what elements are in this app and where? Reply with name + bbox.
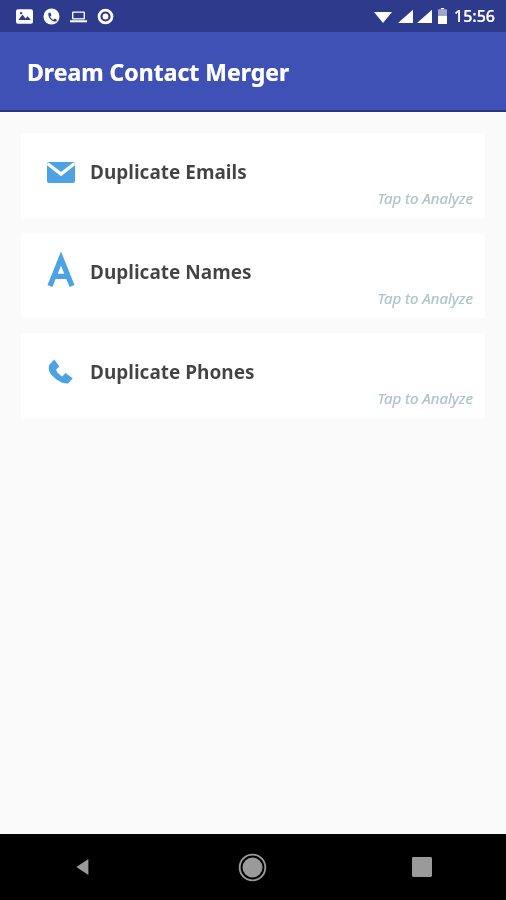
staticText: Tap to Analyze [377,388,473,408]
button[interactable]: Home [168,834,337,900]
other: Email [47,162,75,183]
button[interactable]: Recent apps [337,834,506,900]
button[interactable]: Names [21,233,485,318]
staticText: Dream Contact Merger [27,56,290,87]
other: Phones [47,358,75,386]
staticText: 15:56 [454,5,495,27]
staticText: Duplicate Phones [90,359,255,385]
other: Names [49,258,73,286]
staticText: Tap to Analyze [377,188,473,208]
staticText: Tap to Analyze [377,288,473,308]
button[interactable]: Email [21,133,485,218]
staticText: Duplicate Names [90,259,252,285]
staticText: Duplicate Emails [90,159,247,185]
button[interactable]: Phones [21,333,485,418]
button[interactable]: Back [0,834,168,900]
